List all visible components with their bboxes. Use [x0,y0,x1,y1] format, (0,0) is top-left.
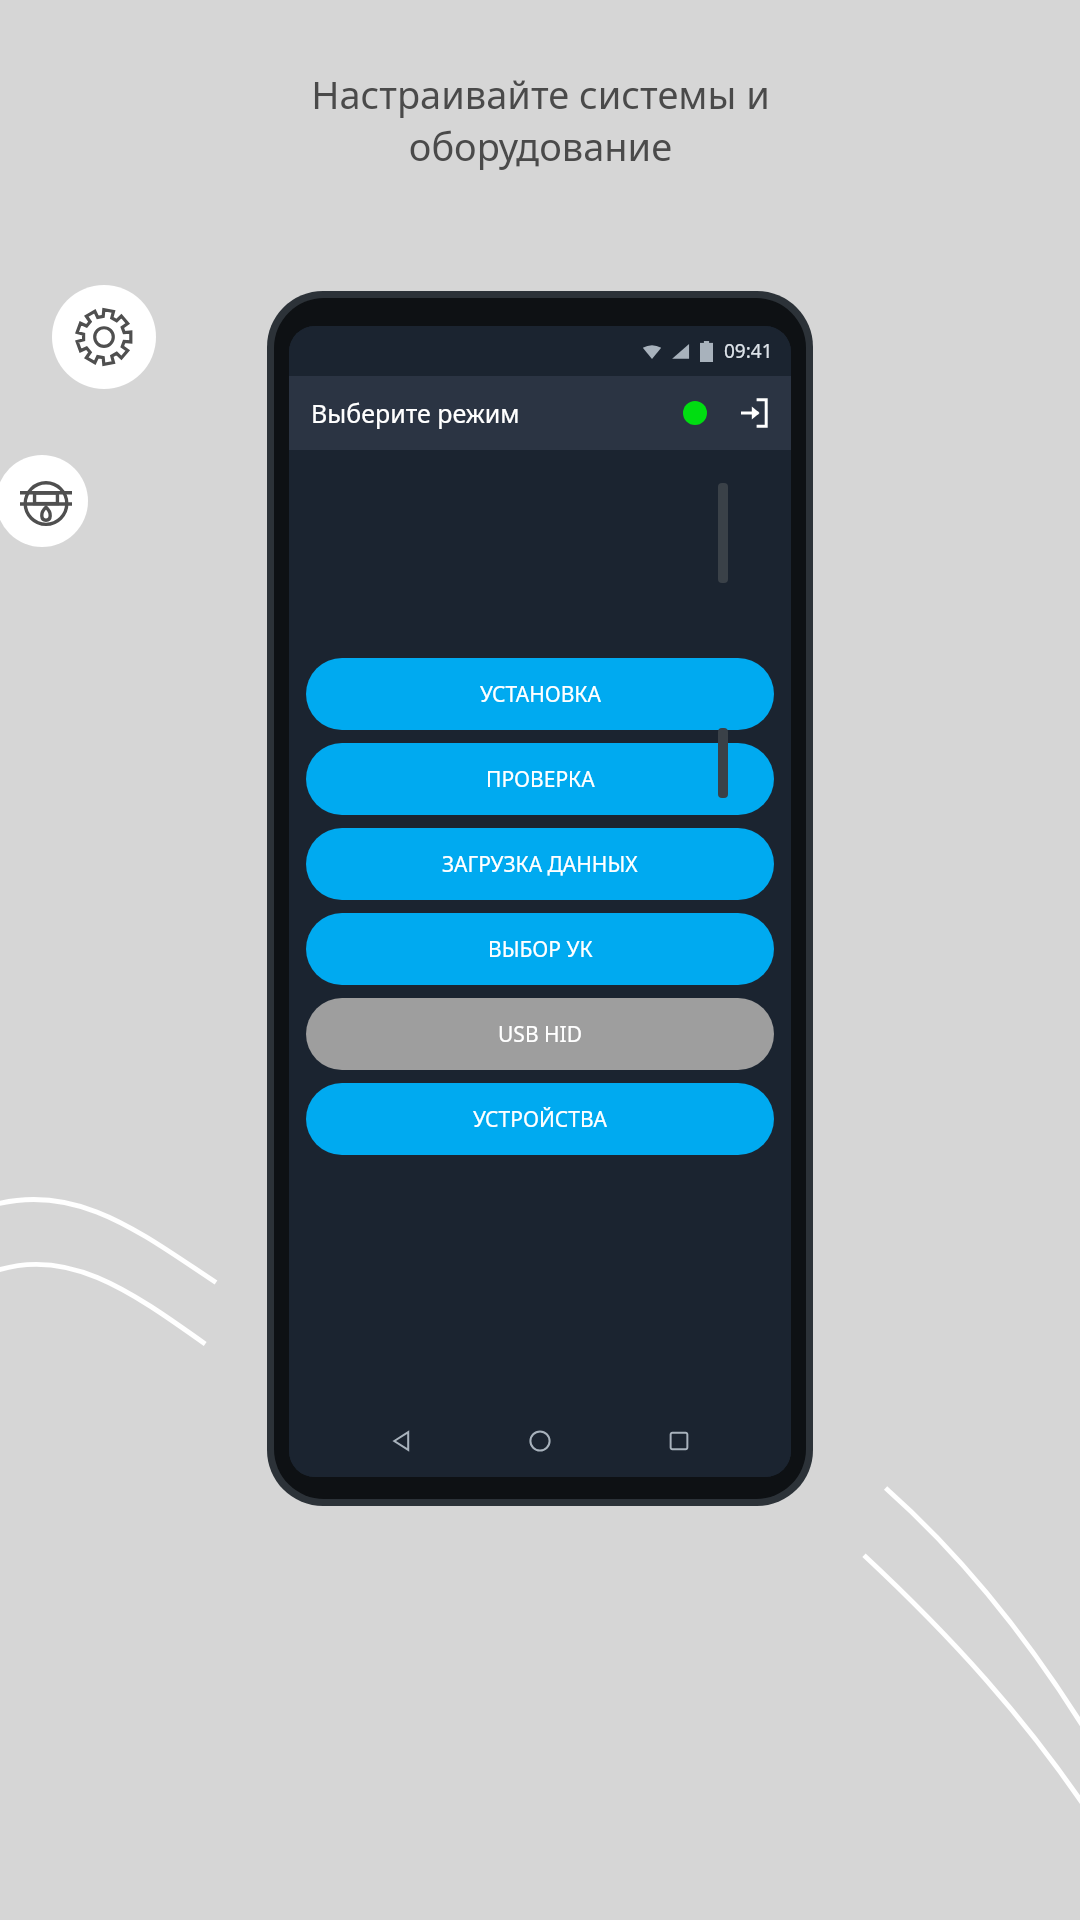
button[interactable]: УСТРОЙСТВА [306,1083,774,1155]
button[interactable]: Recents [652,1414,706,1468]
staticText: ЗАГРУЗКА ДАННЫХ [442,850,638,879]
staticText: УСТРОЙСТВА [473,1105,607,1134]
button[interactable]: USB HID [306,998,774,1070]
staticText: Выберите режим [311,396,520,430]
button[interactable]: Exit [735,395,771,431]
button[interactable]: Home [513,1414,567,1468]
button[interactable]: Back [374,1414,428,1468]
button[interactable]: ВЫБОР УК [306,913,774,985]
staticText: Настраивайте системы и оборудование [311,68,770,172]
button[interactable]: ЗАГРУЗКА ДАННЫХ [306,828,774,900]
button[interactable]: УСТАНОВКА [306,658,774,730]
staticText: ВЫБОР УК [488,935,593,964]
staticText: УСТАНОВКА [480,680,601,709]
staticText: 09:41 [724,338,773,364]
staticText: USB HID [498,1020,582,1049]
button[interactable]: ПРОВЕРКА [306,743,774,815]
staticText: ПРОВЕРКА [486,765,595,794]
